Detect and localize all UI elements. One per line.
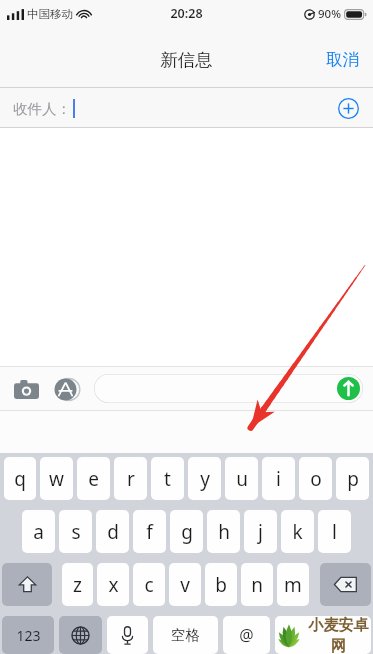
button[interactable]: u — [225, 457, 258, 500]
button[interactable]: x — [97, 563, 129, 606]
button[interactable]: t — [151, 457, 184, 500]
button[interactable]: Numbers — [2, 616, 54, 654]
staticText: a — [33, 519, 44, 545]
button[interactable]: Dictate — [107, 616, 148, 654]
staticText: 取消 — [326, 49, 359, 70]
button[interactable]: z — [62, 563, 93, 606]
button[interactable]: @ — [223, 616, 270, 654]
button[interactable]: Switch keyboard — [59, 616, 102, 654]
button[interactable]: 空格 — [153, 616, 218, 654]
button[interactable]: c — [133, 563, 165, 606]
button[interactable]: l — [318, 510, 351, 553]
button[interactable]: App Store — [51, 374, 81, 404]
button[interactable]: n — [241, 563, 273, 606]
button[interactable]: Camera — [10, 373, 42, 405]
button[interactable]: b — [205, 563, 237, 606]
staticText: 新信息 — [160, 49, 213, 71]
staticText: 中国移动 — [27, 7, 73, 21]
staticText: d — [107, 519, 119, 545]
staticText: u — [236, 466, 248, 492]
staticText: v — [180, 572, 190, 598]
button[interactable]: g — [170, 510, 203, 553]
staticText: w — [49, 466, 64, 492]
button[interactable]: v — [169, 563, 201, 606]
staticText: 小麦安卓网 — [306, 616, 371, 654]
staticText: f — [146, 519, 153, 545]
staticText: t — [164, 466, 171, 492]
button[interactable]: w — [40, 457, 73, 500]
staticText: @ — [239, 624, 254, 646]
button[interactable]: p — [336, 457, 369, 500]
button[interactable]: Shift — [2, 563, 52, 606]
staticText: m — [284, 572, 302, 598]
staticText: x — [108, 572, 119, 598]
button[interactable]: Send — [336, 376, 361, 401]
button[interactable]: d — [96, 510, 129, 553]
button[interactable]: e — [77, 457, 110, 500]
staticText: 空格 — [171, 626, 200, 644]
staticText: 90% — [318, 6, 341, 22]
staticText: o — [310, 466, 322, 492]
button[interactable]: i — [262, 457, 295, 500]
staticText: z — [73, 572, 82, 598]
button[interactable]: o — [299, 457, 332, 500]
button[interactable]: s — [59, 510, 92, 553]
button[interactable]: a — [22, 510, 55, 553]
button[interactable]: r — [114, 457, 147, 500]
staticText: i — [276, 466, 281, 492]
staticText: 20:28 — [170, 5, 203, 22]
button[interactable]: q — [4, 457, 36, 500]
staticText: n — [251, 572, 263, 598]
button[interactable]: y — [188, 457, 221, 500]
staticText: b — [215, 572, 227, 598]
staticText: c — [144, 572, 154, 598]
button[interactable]: h — [207, 510, 240, 553]
staticText: 收件人： — [13, 100, 71, 118]
staticText: 123 — [16, 626, 41, 645]
staticText: l — [332, 519, 337, 545]
staticText: q — [14, 466, 26, 492]
staticText: r — [127, 466, 135, 492]
staticText: j — [258, 519, 263, 545]
button[interactable]: k — [281, 510, 314, 553]
button[interactable]: Add contact — [333, 93, 363, 123]
staticText: s — [71, 519, 81, 545]
staticText: e — [88, 466, 99, 492]
staticText: g — [181, 519, 193, 545]
staticText: y — [200, 466, 210, 492]
button[interactable]: Backspace — [320, 563, 371, 606]
staticText: p — [347, 466, 359, 492]
button[interactable]: f — [133, 510, 166, 553]
button[interactable]: j — [244, 510, 277, 553]
button[interactable]: 取消 — [312, 41, 373, 78]
staticText: h — [218, 519, 230, 545]
staticText: k — [292, 519, 303, 545]
button[interactable] — [275, 616, 371, 654]
button[interactable]: Send — [94, 374, 363, 403]
button[interactable]: m — [277, 563, 309, 606]
